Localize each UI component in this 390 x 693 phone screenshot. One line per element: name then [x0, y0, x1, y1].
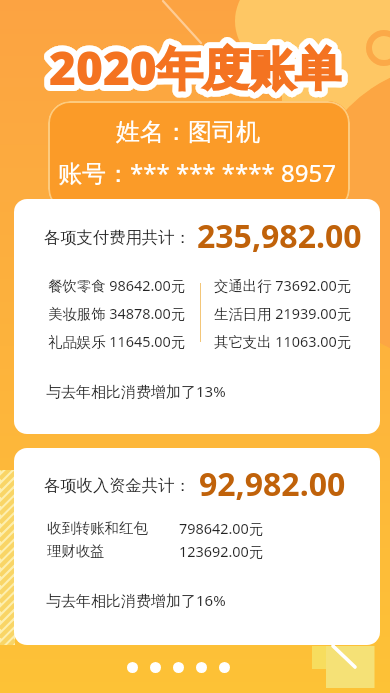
- staticText: 理财收益: [47, 542, 105, 560]
- button[interactable]: Page 2: [150, 662, 161, 673]
- staticText: 与去年相比消费增加了13%: [46, 381, 226, 401]
- staticText: 各项收入资金共计：: [44, 475, 191, 496]
- button[interactable]: Page 1: [127, 662, 138, 673]
- staticText: 姓名：图司机: [116, 117, 260, 147]
- staticText: 账号：*** *** **** 8957: [58, 156, 336, 189]
- staticText: 生活日用 21939.00元: [214, 304, 352, 324]
- staticText: 92,982.00: [199, 462, 346, 506]
- staticText: 与去年相比消费增加了16%: [46, 590, 226, 610]
- button[interactable]: Page 3: [173, 662, 184, 673]
- button[interactable]: Page 5: [219, 662, 230, 673]
- staticText: 其它支出 11063.00元: [214, 332, 352, 352]
- button[interactable]: 各项收入资金共计：: [14, 448, 380, 645]
- staticText: 2020年度账单: [49, 36, 341, 99]
- staticText: 各项支付费用共计：: [44, 227, 191, 248]
- staticText: 2020年度账单: [49, 36, 341, 99]
- button[interactable]: Page 4: [196, 662, 207, 673]
- staticText: 餐饮零食 98642.00元: [48, 276, 186, 296]
- button[interactable]: 各项支付费用共计：: [14, 199, 380, 434]
- staticText: 礼品娱乐 11645.00元: [48, 332, 186, 352]
- staticText: 123692.00元: [179, 542, 264, 562]
- staticText: 交通出行 73692.00元: [214, 276, 352, 296]
- staticText: 235,982.00: [197, 214, 362, 258]
- staticText: 美妆服饰 34878.00元: [48, 304, 186, 324]
- staticText: 收到转账和红包: [47, 519, 148, 537]
- staticText: 798642.00元: [179, 519, 264, 539]
